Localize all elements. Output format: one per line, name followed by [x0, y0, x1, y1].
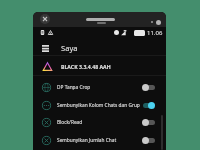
button[interactable]: DP Tanpa Crop toggle: [142, 84, 155, 91]
staticText: Sembunyikan Kolom Chats dan Grup: [57, 102, 140, 109]
button[interactable]: DP Tanpa Crop: [33, 79, 166, 96]
button[interactable]: Sembunyikan Kolom Chats dan Grup toggle: [142, 102, 155, 109]
staticText: DP Tanpa Crop: [57, 84, 140, 91]
staticText: 11.06: [147, 29, 163, 37]
staticText: Sembunyikan Jumlah Chat: [57, 137, 140, 144]
button[interactable]: Menu: [39, 42, 51, 54]
button[interactable]: Block/Read toggle: [142, 119, 155, 126]
button[interactable]: Block/Read: [33, 114, 166, 131]
staticText: Block/Read: [57, 119, 140, 126]
button[interactable]: BLACK 3.3.4.48 AAH: [33, 56, 166, 77]
button[interactable]: Sembunyikan Kolom Chats dan Grup: [33, 97, 166, 114]
staticText: Saya: [61, 43, 78, 53]
button[interactable]: Sembunyikan Jumlah Chat toggle: [142, 137, 155, 144]
staticText: BLACK 3.3.4.48 AAH: [61, 63, 111, 70]
button[interactable]: Sembunyikan Jumlah Chat: [33, 132, 166, 149]
button[interactable]: Close app: [40, 14, 50, 24]
button[interactable]: Menu: [33, 38, 166, 57]
